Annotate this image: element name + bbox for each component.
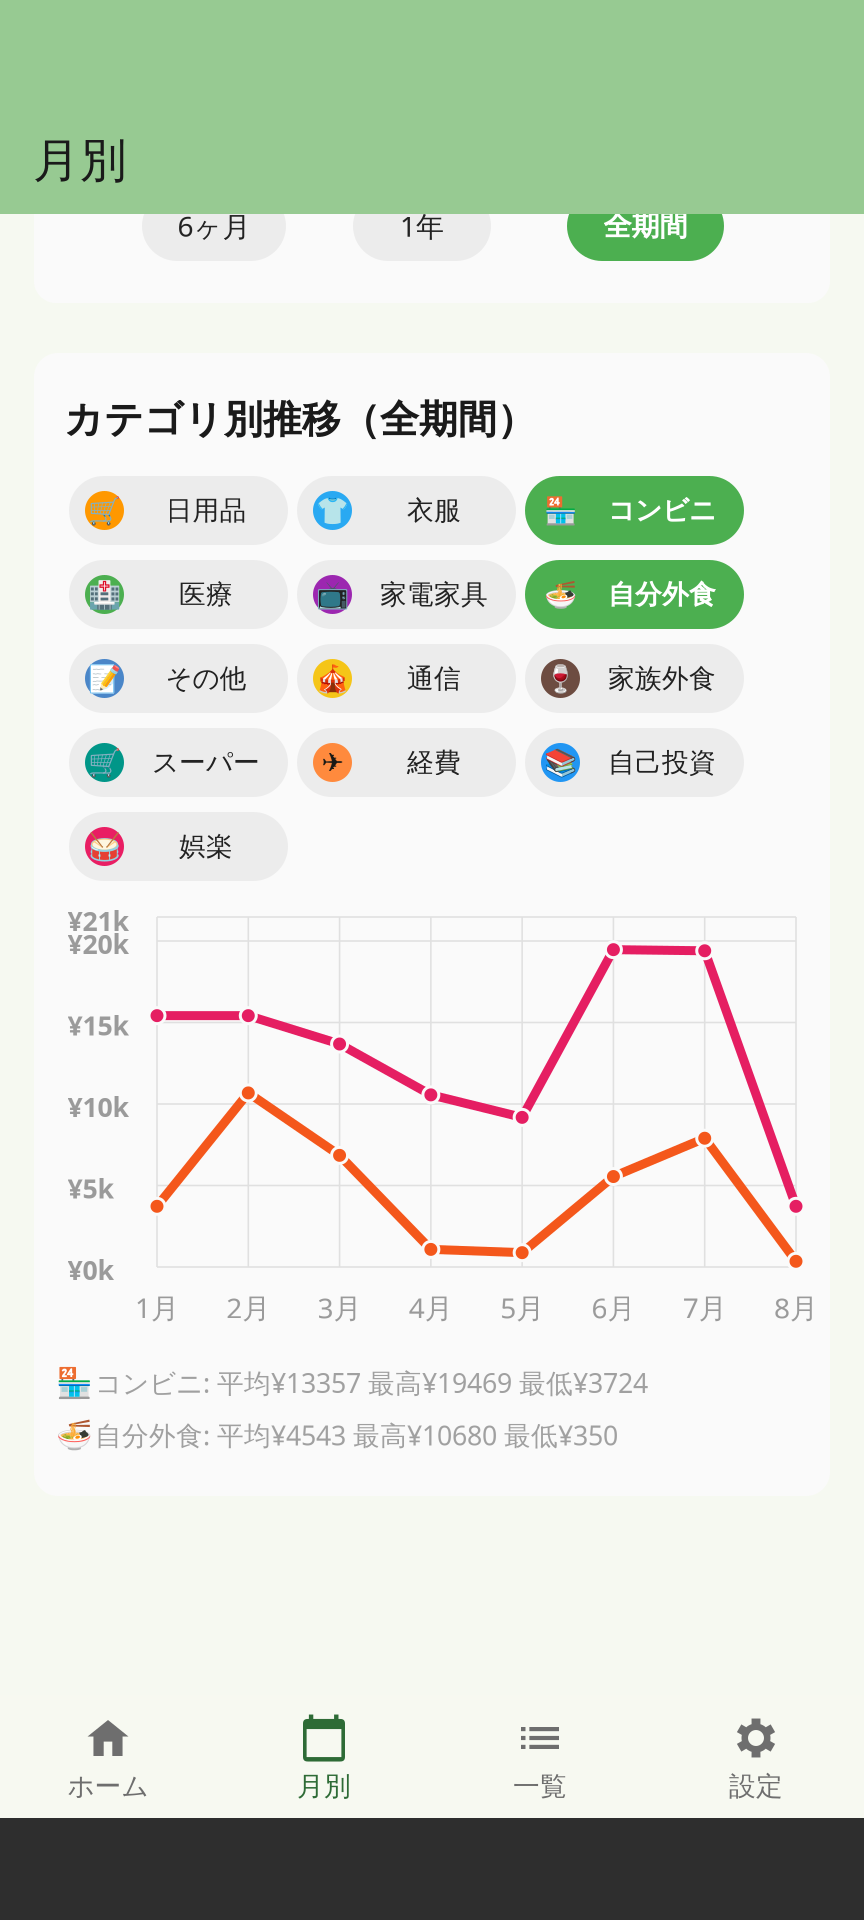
button[interactable]: 📚 <box>525 728 744 797</box>
staticText: 家電家具 <box>380 578 488 611</box>
staticText: 7月 <box>683 1289 727 1326</box>
staticText: 衣服 <box>407 494 461 527</box>
staticText: 🎪 <box>316 663 349 694</box>
staticText: ¥5k <box>67 1170 114 1206</box>
button[interactable]: 📺 <box>297 560 516 629</box>
staticText: 🛒 <box>88 495 121 526</box>
staticText: コンビニ: 平均¥13357 最高¥19469 最低¥3724 <box>95 1365 648 1400</box>
button[interactable]: 👕 <box>297 476 516 545</box>
button[interactable]: 全期間 <box>567 191 724 261</box>
staticText: コンビニ <box>608 494 716 527</box>
staticText: ホーム <box>67 1770 148 1803</box>
staticText: 1月 <box>135 1289 179 1326</box>
staticText: 🍷 <box>544 663 577 694</box>
staticText: 医療 <box>179 578 233 611</box>
staticText: 8月 <box>774 1289 818 1326</box>
staticText: 娯楽 <box>179 830 233 863</box>
staticText: 家族外食 <box>608 662 716 695</box>
staticText: 日用品 <box>165 494 246 527</box>
staticText: スーパー <box>152 746 260 779</box>
staticText: 📚 <box>544 747 577 778</box>
staticText: 2月 <box>226 1289 270 1326</box>
staticText: 通信 <box>407 662 461 695</box>
button[interactable]: 🎪 <box>297 644 516 713</box>
staticText: 1年 <box>400 207 444 245</box>
button[interactable]: 🛒 <box>69 728 288 797</box>
staticText: 5月 <box>500 1289 544 1326</box>
button[interactable]: ✈ <box>297 728 516 797</box>
button[interactable]: 月別 <box>216 1695 432 1818</box>
staticText: 🏪 <box>544 495 577 526</box>
button[interactable]: 🍷 <box>525 644 744 713</box>
staticText: ✈ <box>321 747 343 778</box>
button[interactable]: 🥁 <box>69 812 288 881</box>
button[interactable]: 設定 <box>648 1695 864 1818</box>
staticText: 6ヶ月 <box>177 207 250 245</box>
staticText: 🍜 <box>56 1418 93 1452</box>
staticText: 3月 <box>318 1289 362 1326</box>
staticText: 月別 <box>297 1770 351 1803</box>
staticText: ¥21k <box>67 903 129 938</box>
button[interactable]: 🛒 <box>69 476 288 545</box>
button[interactable]: 🍜 <box>525 560 744 629</box>
staticText: 全期間 <box>603 209 687 243</box>
staticText: 一覧 <box>513 1770 567 1803</box>
button[interactable]: 🏥 <box>69 560 288 629</box>
staticText: 🏥 <box>88 579 121 610</box>
staticText: 自分外食 <box>608 578 716 611</box>
staticText: ¥10k <box>67 1089 129 1124</box>
staticText: 自分外食: 平均¥4543 最高¥10680 最低¥350 <box>95 1417 618 1453</box>
staticText: その他 <box>165 662 246 695</box>
staticText: 👕 <box>316 495 349 526</box>
button[interactable]: 1年 <box>353 191 491 261</box>
staticText: 6月 <box>591 1289 635 1326</box>
button[interactable]: 📝 <box>69 644 288 713</box>
staticText: ¥0k <box>67 1252 114 1287</box>
staticText: 📺 <box>316 579 349 610</box>
button[interactable]: 一覧 <box>432 1695 648 1818</box>
staticText: 設定 <box>729 1770 783 1803</box>
staticText: カテゴリ別推移（全期間） <box>64 396 536 443</box>
staticText: 4月 <box>409 1289 453 1326</box>
staticText: ¥20k <box>67 926 129 961</box>
staticText: 🛒 <box>88 747 121 778</box>
staticText: 🥁 <box>88 831 121 862</box>
staticText: 経費 <box>407 746 461 779</box>
button[interactable]: 🏪 <box>525 476 744 545</box>
staticText: 自己投資 <box>608 746 716 779</box>
button[interactable]: ホーム <box>0 1695 216 1818</box>
staticText: 🍜 <box>544 579 577 610</box>
staticText: 月別 <box>33 132 127 189</box>
button[interactable]: 6ヶ月 <box>142 191 286 261</box>
staticText: 🏪 <box>56 1366 93 1399</box>
staticText: ¥15k <box>67 1007 129 1043</box>
staticText: 📝 <box>88 663 121 694</box>
